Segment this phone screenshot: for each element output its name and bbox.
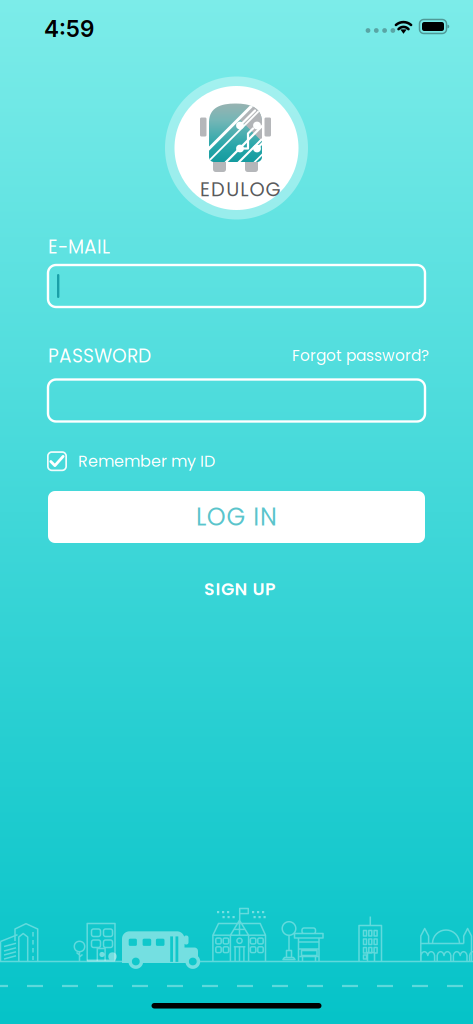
staticText: PASSWORD — [48, 343, 151, 369]
staticText: E-MAIL — [48, 234, 110, 260]
staticText: EDULOG — [200, 176, 280, 203]
staticText: LOG IN — [196, 500, 277, 534]
staticText: 4:59 — [44, 15, 94, 42]
button[interactable]: E-mail — [48, 265, 425, 307]
button[interactable]: Forgot password? — [289, 341, 432, 370]
button[interactable]: SIGN UP — [190, 570, 290, 608]
staticText: SIGN UP — [204, 577, 276, 601]
staticText: Forgot password? — [292, 345, 429, 366]
button[interactable]: Password — [48, 379, 425, 421]
button[interactable]: LOG IN — [48, 491, 425, 543]
staticText: Remember my ID — [78, 450, 215, 472]
button[interactable]: Remember my ID — [47, 448, 215, 474]
